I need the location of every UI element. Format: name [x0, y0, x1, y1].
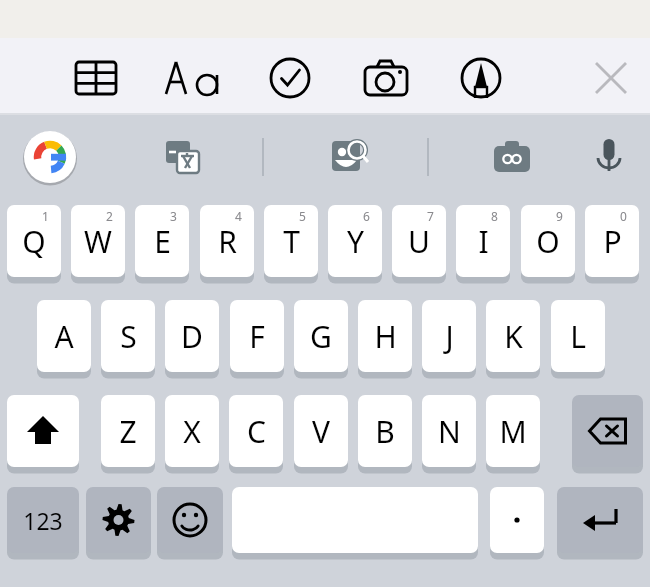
button[interactable]: S [101, 300, 155, 376]
button[interactable]: Z [101, 395, 155, 471]
button[interactable]: Emoji [157, 487, 223, 557]
button[interactable]: Lens [324, 133, 372, 181]
staticText: 123 [23, 505, 63, 536]
staticText: R [218, 221, 237, 262]
staticText: 7 [427, 208, 434, 224]
staticText: L [570, 316, 586, 357]
button[interactable]: Draw [455, 52, 507, 104]
button[interactable] [490, 487, 544, 557]
button[interactable] [232, 487, 478, 557]
button[interactable]: X [165, 395, 219, 471]
button[interactable]: P [585, 205, 639, 281]
button[interactable]: H [358, 300, 412, 376]
button[interactable]: Google [22, 129, 78, 185]
staticText: E [154, 221, 171, 262]
button[interactable]: Shift [7, 395, 79, 471]
button[interactable]: N [422, 395, 476, 471]
button[interactable]: A [37, 300, 91, 376]
staticText: X [183, 411, 201, 452]
button[interactable]: 123 [7, 487, 79, 557]
staticText: 1 [42, 208, 49, 224]
staticText: B [375, 411, 395, 452]
button[interactable]: I [456, 205, 510, 281]
staticText: 5 [299, 208, 306, 224]
staticText: D [181, 316, 203, 357]
staticText: Y [347, 221, 364, 262]
button[interactable]: Settings [86, 487, 151, 557]
staticText: 8 [491, 208, 498, 224]
staticText: 4 [235, 208, 242, 224]
button[interactable]: Voice input [585, 133, 633, 181]
staticText: P [603, 221, 622, 262]
button[interactable]: M [486, 395, 540, 471]
button[interactable]: B [358, 395, 412, 471]
button[interactable]: Q [7, 205, 61, 281]
staticText: O [536, 221, 560, 262]
staticText: T [283, 221, 300, 262]
staticText: 6 [363, 208, 370, 224]
button[interactable]: F [230, 300, 284, 376]
button[interactable]: K [486, 300, 540, 376]
staticText: U [408, 221, 430, 262]
button[interactable]: Y [328, 205, 382, 281]
button[interactable]: Checklist [264, 52, 316, 104]
staticText: Q [22, 221, 46, 262]
staticText: 0 [620, 208, 627, 224]
button[interactable]: E [135, 205, 189, 281]
button[interactable]: Text format [169, 52, 221, 104]
staticText: N [438, 411, 461, 452]
staticText: K [504, 316, 523, 357]
staticText: 3 [170, 208, 177, 224]
staticText: C [247, 411, 266, 452]
button[interactable]: Camera [360, 52, 412, 104]
staticText: V [312, 411, 330, 452]
staticText: S [120, 316, 137, 357]
staticText: A [54, 316, 74, 357]
staticText: Z [119, 411, 137, 452]
staticText: H [374, 316, 397, 357]
staticText: 9 [556, 208, 563, 224]
button[interactable]: Enter [557, 487, 643, 557]
button[interactable]: V [294, 395, 348, 471]
button[interactable]: L [551, 300, 605, 376]
staticText: F [249, 316, 265, 357]
staticText: G [310, 316, 332, 357]
button[interactable]: U [392, 205, 446, 281]
staticText: M [499, 411, 527, 452]
button[interactable]: O [521, 205, 575, 281]
button[interactable]: Table [70, 52, 122, 104]
button[interactable]: T [264, 205, 318, 281]
button[interactable]: G [294, 300, 348, 376]
button[interactable]: C [229, 395, 283, 471]
button[interactable]: W [71, 205, 125, 281]
staticText: J [445, 316, 454, 357]
button[interactable]: J [422, 300, 476, 376]
button[interactable]: R [200, 205, 254, 281]
staticText: W [84, 221, 112, 262]
button[interactable]: Backspace [572, 395, 643, 471]
button[interactable]: Close [585, 52, 637, 104]
staticText: I [478, 221, 489, 262]
button[interactable]: D [165, 300, 219, 376]
staticText: 2 [106, 208, 113, 224]
button[interactable]: Translate [158, 133, 206, 181]
button[interactable]: GIF [488, 133, 536, 181]
